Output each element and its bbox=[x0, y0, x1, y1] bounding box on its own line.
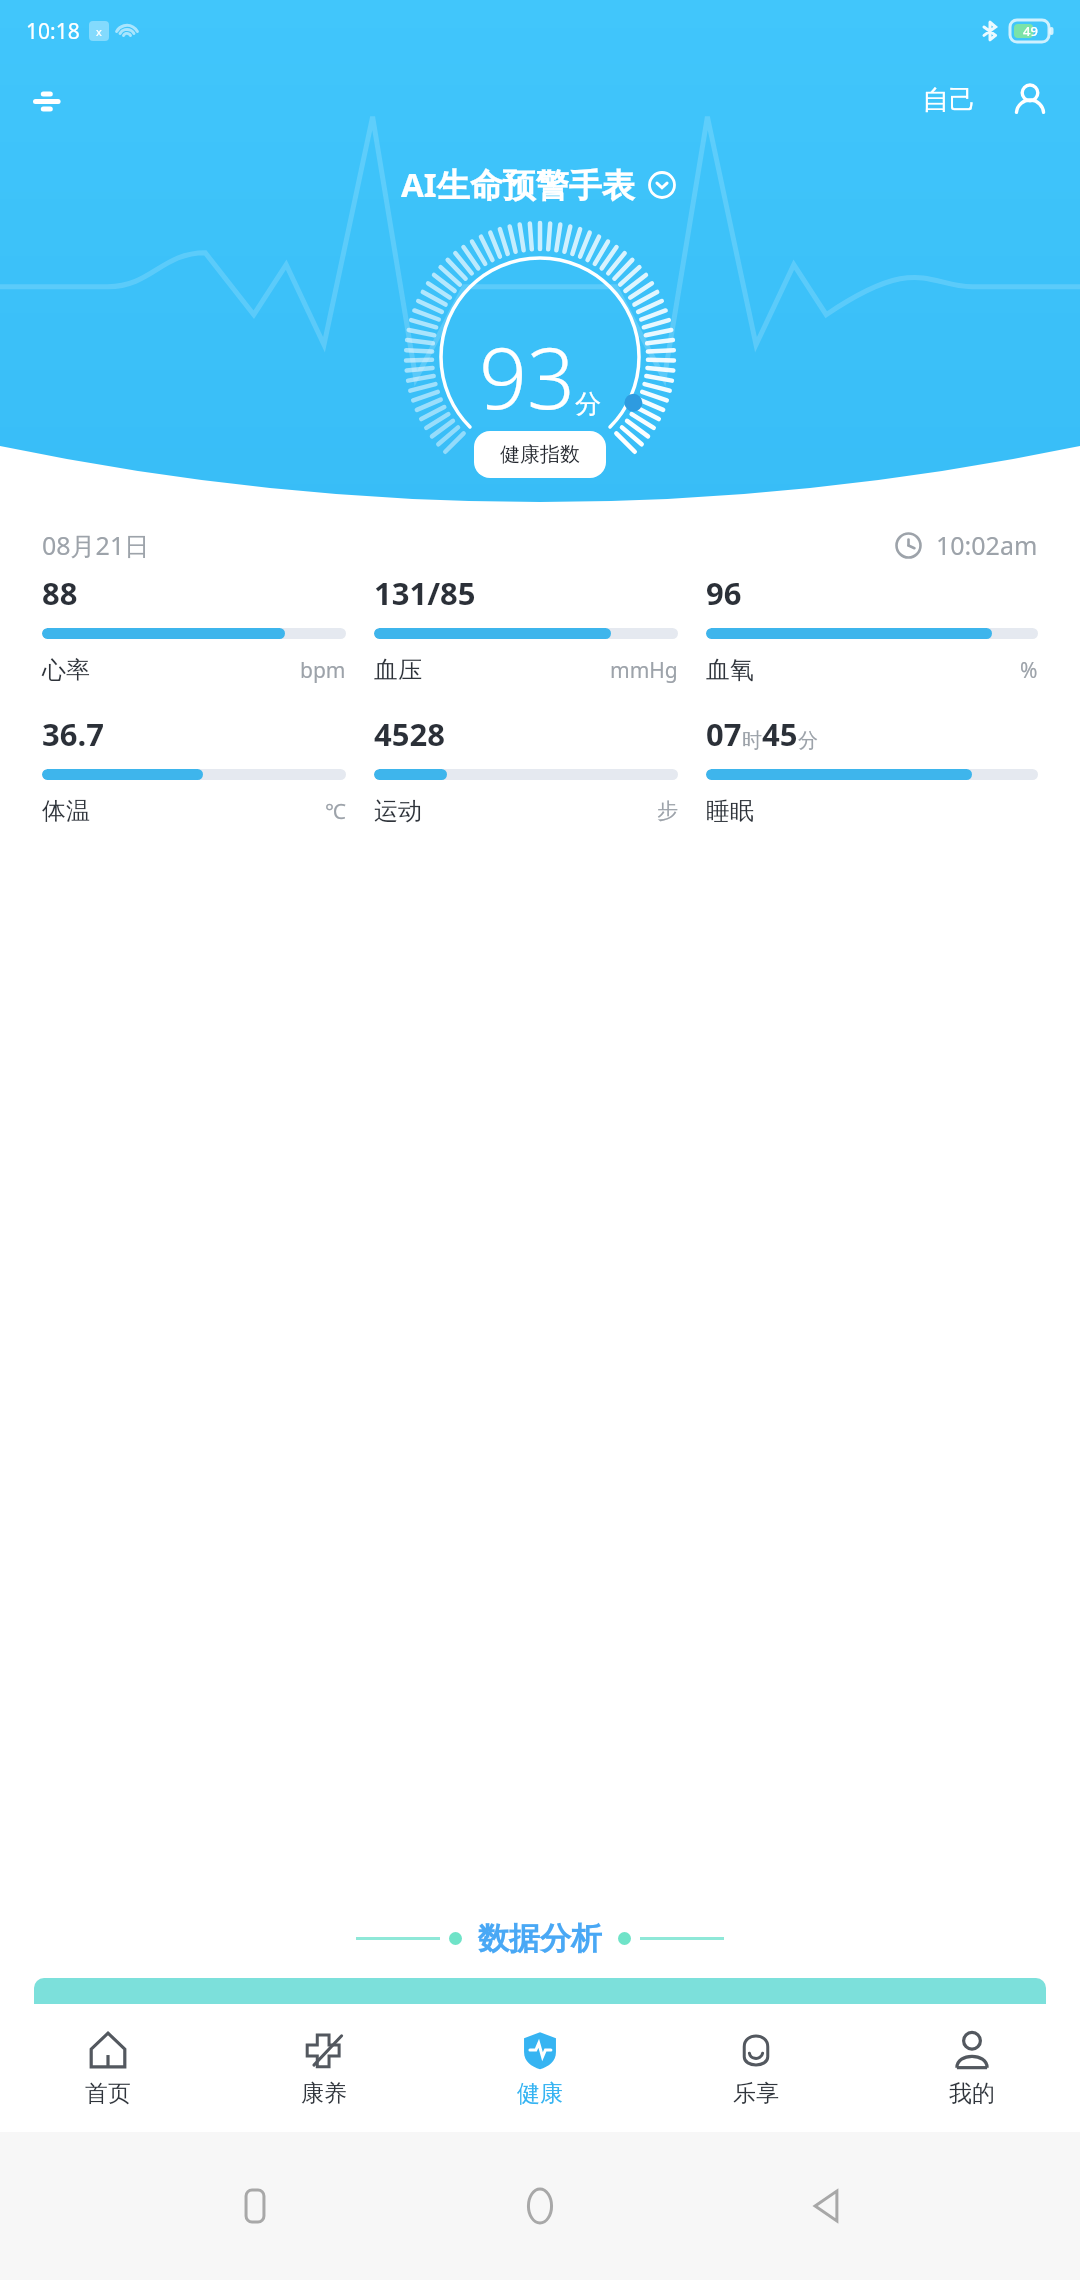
staticText: 血氧 bbox=[706, 655, 754, 685]
staticText: 4528 bbox=[374, 713, 445, 755]
staticText: ℃ bbox=[325, 797, 346, 826]
button[interactable]: Expand bbox=[645, 168, 679, 202]
button[interactable]: 健康指数 bbox=[474, 431, 606, 478]
button[interactable]: Menu bbox=[26, 78, 70, 122]
button[interactable]: Back bbox=[795, 2175, 857, 2237]
staticText: 49 bbox=[1023, 22, 1038, 40]
staticText: 96 bbox=[706, 572, 742, 614]
staticText: 时 bbox=[742, 728, 762, 753]
staticText: 首页 bbox=[85, 2079, 131, 2108]
staticText: 分 bbox=[575, 388, 601, 421]
staticText: 07 bbox=[706, 713, 742, 755]
button[interactable]: 4528 bbox=[374, 713, 706, 826]
button[interactable]: 36.7 bbox=[42, 713, 374, 826]
button[interactable]: 健康 bbox=[432, 2004, 648, 2132]
staticText: bpm bbox=[300, 656, 346, 685]
staticText: 131/85 bbox=[374, 572, 476, 614]
staticText: 体温 bbox=[42, 796, 90, 826]
staticText: 步 bbox=[657, 798, 678, 824]
button[interactable]: 96 bbox=[706, 572, 1038, 685]
button[interactable]: 07 bbox=[706, 713, 1038, 826]
staticText: 88 bbox=[42, 572, 78, 614]
button[interactable]: 首页 bbox=[0, 2004, 216, 2132]
staticText: 我的 bbox=[949, 2079, 995, 2108]
button[interactable]: Home bbox=[509, 2175, 571, 2237]
staticText: 10:02am bbox=[936, 528, 1038, 562]
staticText: 健康指数 bbox=[500, 442, 580, 467]
staticText: 乐享 bbox=[733, 2079, 779, 2108]
staticText: 93 bbox=[479, 319, 575, 433]
staticText: 分 bbox=[798, 728, 818, 753]
staticText: 运动 bbox=[374, 796, 422, 826]
staticText: 自己 bbox=[922, 83, 976, 117]
button[interactable]: 自己 bbox=[914, 77, 984, 123]
staticText: 36.7 bbox=[42, 713, 104, 755]
button[interactable]: Recent apps bbox=[224, 2175, 286, 2237]
button[interactable]: 88 bbox=[42, 572, 374, 685]
staticText: 康养 bbox=[301, 2079, 347, 2108]
staticText: x bbox=[96, 24, 102, 39]
staticText: 10:18 bbox=[26, 17, 80, 46]
button[interactable]: 131/85 bbox=[374, 572, 706, 685]
staticText: 08月21日 bbox=[42, 528, 150, 562]
button[interactable]: Profile bbox=[1006, 76, 1054, 124]
button[interactable]: 康养 bbox=[216, 2004, 432, 2132]
staticText: mmHg bbox=[610, 656, 678, 685]
button[interactable]: 我的 bbox=[864, 2004, 1080, 2132]
staticText: 血压 bbox=[374, 655, 422, 685]
staticText: 45 bbox=[762, 713, 798, 755]
staticText: 健康 bbox=[517, 2079, 563, 2108]
staticText: 数据分析 bbox=[478, 1919, 602, 1958]
staticText: % bbox=[1020, 656, 1038, 685]
staticText: 睡眠 bbox=[706, 796, 754, 826]
staticText: 心率 bbox=[42, 655, 90, 685]
button[interactable]: 乐享 bbox=[648, 2004, 864, 2132]
staticText: AI生命预警手表 bbox=[401, 162, 635, 207]
